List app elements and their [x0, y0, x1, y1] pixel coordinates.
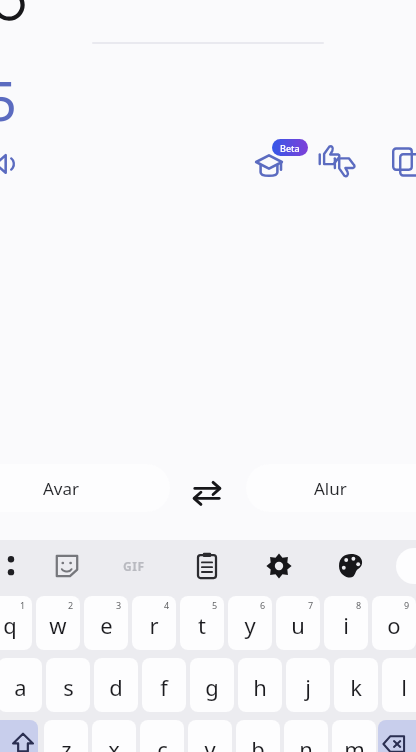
button[interactable]: n: [284, 720, 328, 752]
button[interactable]: Settings: [264, 551, 294, 581]
button[interactable]: More: [0, 552, 18, 580]
button[interactable]: u: [276, 596, 320, 650]
staticText: s: [63, 672, 74, 702]
button[interactable]: f: [142, 658, 186, 712]
staticText: 5: [212, 599, 218, 611]
button[interactable]: d: [94, 658, 138, 712]
button[interactable]: z: [44, 720, 88, 752]
staticText: GIF: [123, 558, 145, 574]
button[interactable]: Rate translation: [318, 144, 360, 186]
button[interactable]: m: [332, 720, 376, 752]
staticText: 7: [308, 599, 314, 611]
button[interactable]: Shift: [0, 720, 38, 752]
button[interactable]: q: [0, 596, 32, 650]
button[interactable]: o: [372, 596, 416, 650]
staticText: f: [160, 672, 168, 702]
staticText: n: [299, 734, 313, 752]
button[interactable]: c: [140, 720, 184, 752]
button[interactable]: b: [236, 720, 280, 752]
staticText: 2: [68, 599, 74, 611]
staticText: Avar: [43, 477, 80, 500]
staticText: 3: [116, 599, 122, 611]
button[interactable]: Practice, Beta: [252, 140, 296, 184]
button[interactable]: Swap languages: [188, 474, 226, 512]
button[interactable]: Alur: [246, 464, 416, 512]
button[interactable]: h: [238, 658, 282, 712]
button[interactable]: Copy: [390, 146, 416, 178]
staticText: u: [291, 610, 305, 640]
button[interactable]: a: [0, 658, 42, 712]
button[interactable]: y: [228, 596, 272, 650]
staticText: o: [387, 610, 401, 640]
button[interactable]: Stickers: [52, 551, 82, 581]
staticText: 8: [356, 599, 362, 611]
button[interactable]: Themes: [336, 551, 366, 581]
staticText: z: [61, 734, 72, 752]
staticText: d: [109, 672, 123, 702]
staticText: v: [204, 734, 216, 752]
button[interactable]: g: [190, 658, 234, 712]
button[interactable]: v: [188, 720, 232, 752]
staticText: c: [157, 734, 168, 752]
button[interactable]: l: [382, 658, 416, 712]
staticText: k: [350, 672, 362, 702]
button[interactable]: Clipboard: [192, 551, 222, 581]
staticText: 4: [164, 599, 170, 611]
button[interactable]: GIF: [117, 552, 151, 580]
staticText: 6: [260, 599, 266, 611]
staticText: Beta: [280, 142, 300, 154]
button[interactable]: Listen: [0, 147, 22, 181]
button[interactable]: s: [46, 658, 90, 712]
staticText: h: [253, 672, 267, 702]
staticText: g: [205, 672, 219, 702]
staticText: e: [100, 610, 113, 640]
button[interactable]: k: [334, 658, 378, 712]
staticText: b: [251, 734, 265, 752]
staticText: Alur: [314, 477, 347, 500]
staticText: 9: [404, 599, 410, 611]
staticText: x: [108, 734, 120, 752]
button[interactable]: Avar: [0, 464, 170, 512]
staticText: y: [244, 610, 256, 640]
button[interactable]: i: [324, 596, 368, 650]
staticText: l: [401, 672, 407, 702]
staticText: 5: [0, 63, 17, 137]
button[interactable]: w: [36, 596, 80, 650]
button[interactable]: Backspace: [378, 720, 416, 752]
staticText: 1: [20, 599, 26, 611]
staticText: w: [49, 610, 67, 640]
staticText: t: [198, 610, 206, 640]
button[interactable]: t: [180, 596, 224, 650]
button[interactable]: e: [84, 596, 128, 650]
button[interactable]: x: [92, 720, 136, 752]
staticText: i: [343, 610, 349, 640]
button[interactable]: j: [286, 658, 330, 712]
staticText: m: [344, 734, 365, 752]
staticText: j: [305, 672, 311, 702]
button[interactable]: Voice input: [396, 548, 416, 584]
staticText: a: [14, 672, 27, 702]
staticText: q: [3, 610, 17, 640]
button[interactable]: r: [132, 596, 176, 650]
staticText: r: [149, 610, 159, 640]
